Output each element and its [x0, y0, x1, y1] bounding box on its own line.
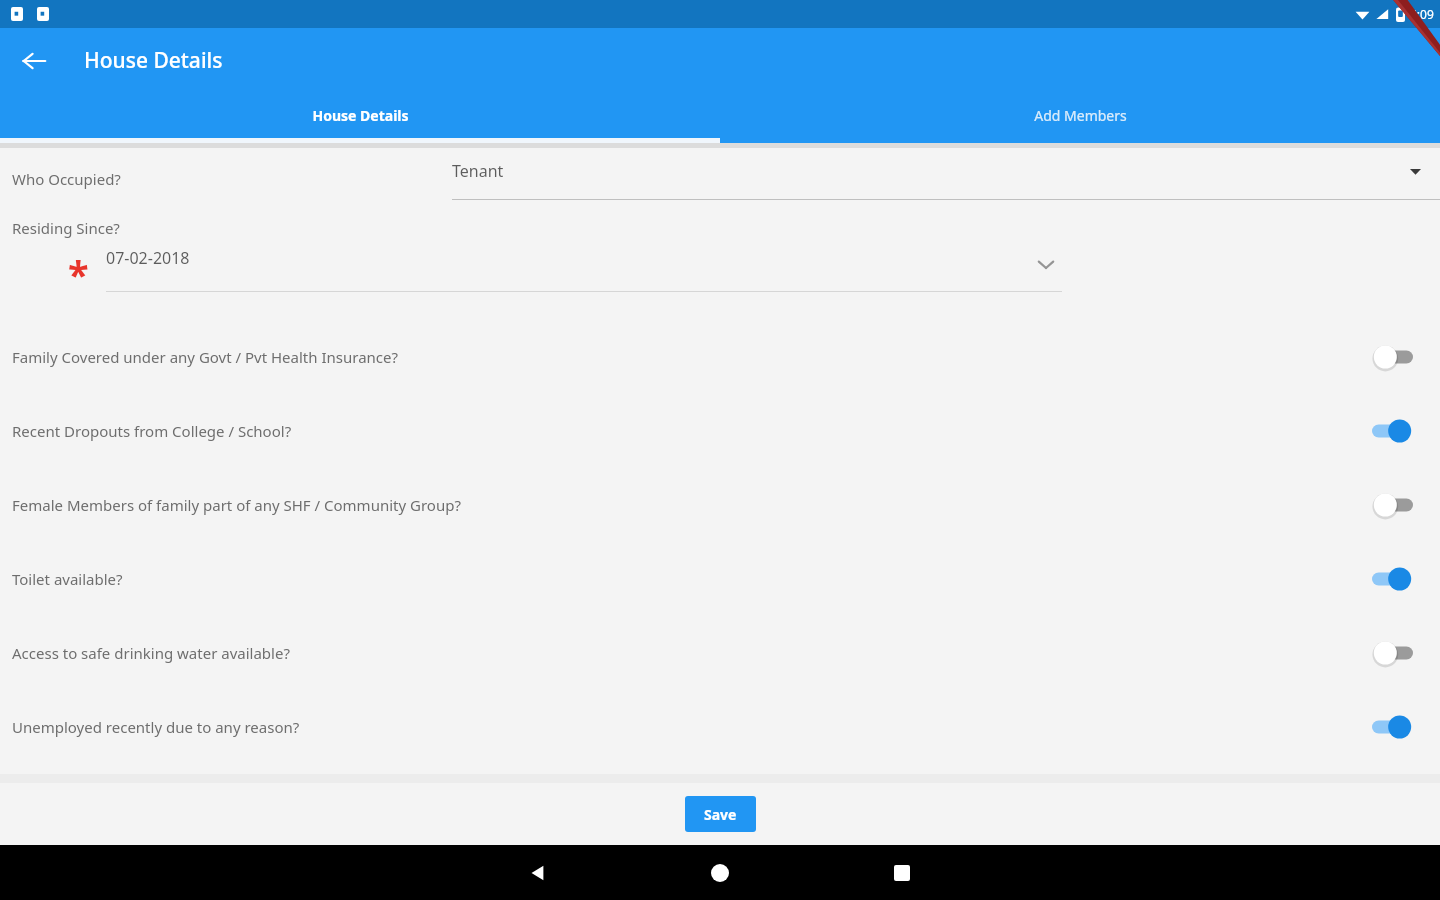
- staticText: Residing Since?: [12, 218, 120, 238]
- button[interactable]: Save: [685, 796, 756, 832]
- button[interactable]: Tenant: [452, 154, 1440, 200]
- staticText: House Details: [312, 106, 409, 125]
- staticText: Add Members: [1034, 106, 1127, 125]
- staticText: House Details: [84, 46, 223, 75]
- button[interactable]: Home: [696, 849, 744, 897]
- button[interactable]: Back: [12, 39, 56, 83]
- staticText: *: [68, 248, 89, 300]
- button[interactable]: Recent Dropouts from College / School?: [0, 394, 1440, 468]
- button[interactable]: Toilet available?: [0, 542, 1440, 616]
- button[interactable]: Unemployed recently due to any reason?: [0, 690, 1440, 764]
- staticText: Save: [704, 805, 737, 824]
- staticText: Who Occupied?: [12, 169, 121, 189]
- staticText: Unemployed recently due to any reason?: [12, 717, 300, 737]
- button[interactable]: Access to safe drinking water available?: [0, 616, 1440, 690]
- button[interactable]: Back: [514, 849, 562, 897]
- staticText: Tenant: [452, 160, 504, 182]
- button[interactable]: 07-02-2018: [106, 240, 1062, 292]
- staticText: 07-02-2018: [106, 247, 190, 269]
- button[interactable]: House Details: [0, 93, 720, 138]
- staticText: Female Members of family part of any SHF…: [12, 495, 461, 515]
- button[interactable]: Female Members of family part of any SHF…: [0, 468, 1440, 542]
- staticText: Toilet available?: [12, 569, 123, 589]
- button[interactable]: Recent apps: [878, 849, 926, 897]
- staticText: Access to safe drinking water available?: [12, 643, 290, 663]
- staticText: Recent Dropouts from College / School?: [12, 421, 292, 441]
- button[interactable]: Family Covered under any Govt / Pvt Heal…: [0, 320, 1440, 394]
- staticText: Family Covered under any Govt / Pvt Heal…: [12, 347, 399, 367]
- button[interactable]: Add Members: [720, 93, 1440, 138]
- staticText: 4:09: [1410, 6, 1434, 22]
